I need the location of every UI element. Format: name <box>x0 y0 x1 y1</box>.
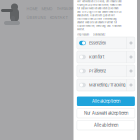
button[interactable]: MEMO <box>41 6 52 11</box>
staticText: Impressum <box>77 33 89 36</box>
button[interactable]: THERAPIE <box>56 6 73 11</box>
button[interactable]: Komfort <box>77 51 135 63</box>
staticText: Alle akzeptieren <box>92 99 120 104</box>
staticText: weiter. <box>77 28 85 31</box>
button[interactable]: Präferenz <box>77 65 135 77</box>
staticText: ÜBER UNS <box>26 15 45 20</box>
staticText: unserer Website an unsere Partner für <box>77 21 117 24</box>
button[interactable]: Nur Auswahl akzeptieren <box>77 108 135 118</box>
staticText: Anzeigen zu personalisieren, Funktionen <box>77 3 121 6</box>
staticText: KONTAKT <box>49 15 67 20</box>
staticText: Komfort <box>89 55 104 59</box>
button[interactable]: HOME <box>26 6 37 11</box>
staticText: Datenschutz <box>93 33 105 36</box>
button[interactable]: Marketing / Tracking <box>77 79 135 91</box>
staticText: Marketing / Tracking <box>89 83 125 87</box>
staticText: MEMO <box>41 6 52 11</box>
button[interactable]: KONTAKT <box>49 15 67 20</box>
staticText: Informationen zu Ihrer Verwendung <box>77 17 117 20</box>
staticText: Essenziell <box>89 41 106 45</box>
staticText: Präferenz <box>89 69 106 73</box>
staticText: Alle ablehnen <box>94 123 118 128</box>
staticText: Wir verwenden Cookies, um Inhalte und <box>77 0 122 3</box>
staticText: Soziale Medien, Werbung und Analysen <box>77 24 121 27</box>
staticText: HOME <box>26 6 37 11</box>
staticText: und die Zugriffe auf unsere Website zu <box>77 10 121 13</box>
staticText: Nur Auswahl akzeptieren <box>84 111 128 116</box>
staticText: für soziale Medien anbieten zu können <box>77 7 118 10</box>
button[interactable]: Alle akzeptieren <box>77 96 135 106</box>
button[interactable]: Alle ablehnen <box>77 120 135 130</box>
button[interactable]: Impressum <box>77 33 89 36</box>
button[interactable]: Essenziell <box>77 37 135 49</box>
button[interactable]: Datenschutz <box>93 33 105 36</box>
staticText: THERAPIE <box>56 6 73 11</box>
button[interactable]: ÜBER UNS <box>26 15 45 20</box>
staticText: analysieren. Außerdem geben wir <box>77 14 115 17</box>
